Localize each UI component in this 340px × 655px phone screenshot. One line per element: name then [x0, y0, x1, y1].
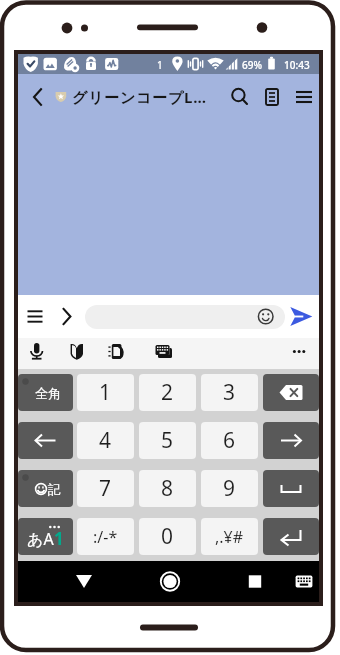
button[interactable]: Message input: [85, 305, 285, 329]
staticText: 4: [99, 426, 112, 455]
button[interactable]: Recents: [235, 561, 275, 602]
button[interactable]: Home: [150, 561, 190, 602]
staticText: 10:43: [284, 58, 310, 72]
button[interactable]: right: [263, 422, 319, 459]
button[interactable]: Back: [64, 561, 104, 602]
button[interactable]: zenkaku: [18, 374, 73, 411]
staticText: 5: [161, 426, 174, 455]
staticText: 記: [48, 481, 61, 497]
button[interactable]: 0: [139, 518, 196, 555]
button[interactable]: sym1: [77, 518, 134, 555]
button[interactable]: Menu: [288, 74, 320, 120]
staticText: :/-*: [93, 526, 118, 548]
staticText: 1: [99, 378, 112, 407]
staticText: 3: [223, 378, 236, 407]
button[interactable]: left: [18, 422, 73, 459]
staticText: 全角: [35, 385, 61, 401]
button[interactable]: 9: [201, 470, 258, 507]
button[interactable]: emoji: [18, 470, 73, 507]
button[interactable]: enter: [263, 518, 319, 555]
button[interactable]: 3: [201, 374, 258, 411]
button[interactable]: Expand: [52, 295, 82, 338]
button[interactable]: 7: [77, 470, 134, 507]
button[interactable]: 5: [139, 422, 196, 459]
button[interactable]: bs: [263, 374, 319, 411]
staticText: 1: [157, 58, 163, 72]
button[interactable]: 1: [77, 374, 134, 411]
staticText: グリーンコープL…: [72, 87, 207, 107]
staticText: 8: [161, 474, 174, 503]
button[interactable]: space: [263, 470, 319, 507]
staticText: 0: [161, 522, 174, 551]
staticText: 9: [223, 474, 236, 503]
button[interactable]: aA1: [18, 518, 73, 555]
staticText: 6: [223, 426, 236, 455]
button[interactable]: Switch keyboard: [284, 561, 324, 602]
button[interactable]: 2: [139, 374, 196, 411]
staticText: 7: [99, 474, 112, 503]
button[interactable]: 4: [77, 422, 134, 459]
staticText: ,.¥#: [215, 526, 244, 548]
button[interactable]: 8: [139, 470, 196, 507]
button[interactable]: sym2: [201, 518, 258, 555]
staticText: 2: [161, 378, 174, 407]
staticText: 69%: [242, 58, 262, 72]
button[interactable]: Notes: [256, 74, 288, 120]
staticText: 1: [54, 527, 64, 550]
button[interactable]: Back: [25, 74, 51, 120]
button[interactable]: 6: [201, 422, 258, 459]
button[interactable]: Keyboard options: [18, 295, 52, 338]
button[interactable]: Search: [224, 74, 256, 120]
staticText: あA: [27, 528, 54, 550]
